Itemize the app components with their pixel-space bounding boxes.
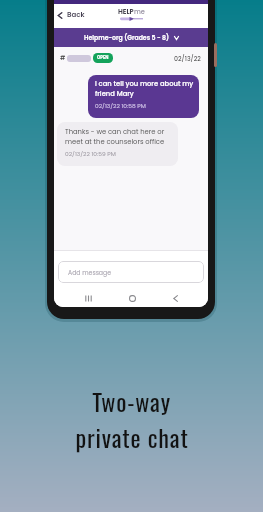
staticText: OPEN: [97, 55, 109, 61]
staticText: Thanks - we can chat here or meet at the…: [65, 127, 165, 146]
staticText: 02/13/22: [174, 54, 201, 63]
button[interactable]: Add message: [58, 261, 204, 283]
button[interactable]: Helpme-org (Grades 5 - 8): [54, 28, 208, 47]
button[interactable]: [85, 295, 92, 302]
button[interactable]: [129, 295, 136, 302]
staticText: Back: [67, 10, 85, 20]
staticText: me: [134, 7, 145, 16]
staticText: private chat: [75, 419, 189, 455]
button[interactable]: Back: [57, 10, 85, 20]
staticText: I can tell you more about my friend Mary: [95, 79, 194, 98]
staticText: Two-way: [92, 383, 171, 419]
staticText: 02/13/22 10:58 PM: [95, 102, 146, 110]
staticText: HELP: [118, 7, 134, 16]
staticText: #: [60, 54, 66, 62]
staticText: 02/13/22 10:59 PM: [65, 150, 116, 158]
button[interactable]: [173, 295, 178, 302]
staticText: Helpme-org (Grades 5 - 8): [84, 33, 170, 42]
button[interactable]: OPEN: [97, 55, 109, 61]
staticText: Add message: [68, 268, 112, 277]
